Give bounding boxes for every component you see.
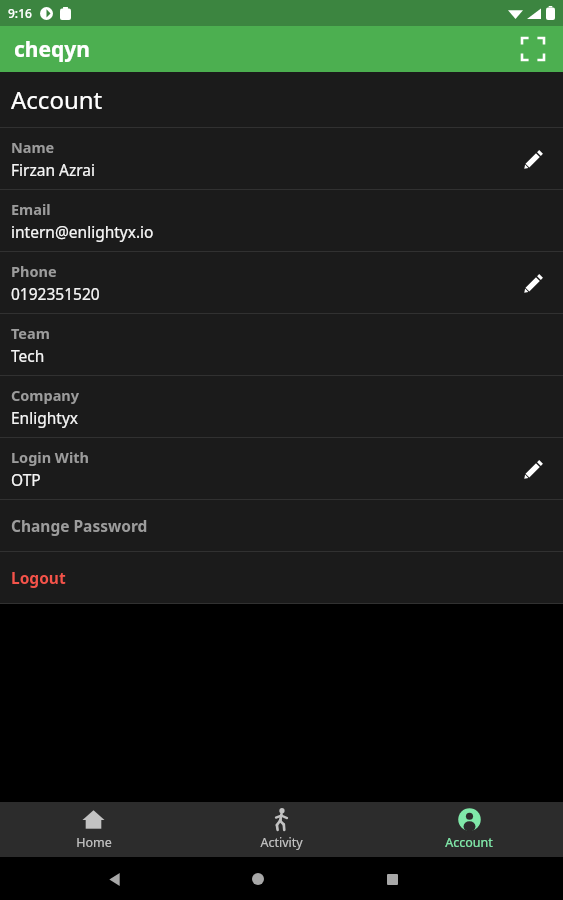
staticText: intern@enlightyx.io — [11, 221, 154, 242]
button[interactable]: Phone — [0, 252, 563, 313]
button[interactable]: Edit Login With — [511, 447, 555, 491]
button[interactable]: Home — [0, 802, 187, 857]
button[interactable]: Email — [0, 190, 563, 251]
staticText: 9:16 — [8, 5, 32, 21]
staticText: 0192351520 — [11, 283, 100, 304]
staticText: Firzan Azrai — [11, 159, 96, 180]
button[interactable]: Company — [0, 376, 563, 437]
button[interactable]: Edit Name — [511, 137, 555, 181]
button[interactable]: Home — [238, 859, 278, 899]
staticText: Phone — [11, 261, 57, 281]
staticText: Login With — [11, 447, 89, 467]
button[interactable]: Activity — [187, 802, 375, 857]
button[interactable]: Team — [0, 314, 563, 375]
staticText: Team — [11, 323, 50, 343]
button[interactable]: Logout — [0, 552, 563, 603]
button[interactable]: Account — [375, 802, 563, 857]
button[interactable]: Name — [0, 128, 563, 189]
button[interactable]: Fullscreen scan — [513, 29, 553, 69]
staticText: Tech — [11, 345, 45, 366]
button[interactable]: Recent apps — [372, 859, 412, 899]
staticText: Account — [445, 834, 493, 851]
staticText: Home — [76, 834, 112, 851]
staticText: Name — [11, 137, 55, 157]
button[interactable]: Change Password — [0, 500, 563, 551]
button[interactable]: Edit Phone — [511, 261, 555, 305]
staticText: Account — [11, 83, 103, 116]
staticText: Email — [11, 199, 51, 219]
staticText: Enlightyx — [11, 407, 79, 428]
staticText: Activity — [260, 834, 303, 851]
button[interactable]: Back — [94, 859, 134, 899]
staticText: cheqyn — [14, 35, 90, 64]
button[interactable]: Login With — [0, 438, 563, 499]
staticText: OTP — [11, 469, 41, 490]
staticText: Logout — [11, 567, 66, 588]
staticText: Change Password — [11, 515, 148, 536]
staticText: Company — [11, 385, 80, 405]
